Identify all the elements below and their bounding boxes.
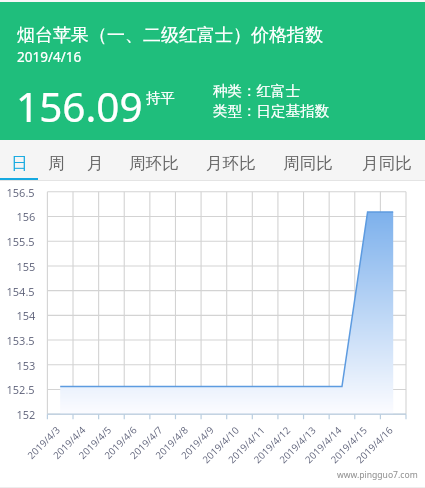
staticText: 日 bbox=[11, 153, 28, 174]
staticText: 周同比 bbox=[283, 153, 333, 174]
button[interactable]: 周环比 bbox=[113, 140, 190, 181]
staticText: 月同比 bbox=[362, 153, 412, 174]
staticText: 持平 bbox=[146, 89, 175, 107]
staticText: 烟台苹果（一、二级红富士）价格指数 bbox=[17, 24, 323, 47]
button[interactable]: 周 bbox=[35, 140, 73, 181]
button[interactable]: 日 bbox=[0, 140, 35, 181]
staticText: 2019/4/16 bbox=[17, 48, 82, 66]
staticText: 月环比 bbox=[206, 153, 256, 174]
staticText: 周 bbox=[48, 153, 65, 174]
button[interactable]: 月环比 bbox=[190, 140, 267, 181]
button[interactable]: 月同比 bbox=[345, 140, 425, 181]
staticText: 类型：日定基指数 bbox=[213, 102, 329, 120]
staticText: 周环比 bbox=[129, 153, 179, 174]
button[interactable]: 月 bbox=[73, 140, 113, 181]
staticText: 月 bbox=[87, 153, 104, 174]
button[interactable]: 周同比 bbox=[267, 140, 345, 181]
staticText: 种类：红富士 bbox=[213, 82, 300, 100]
staticText: 156.09 bbox=[16, 79, 143, 134]
other: 烟台苹果价格指数折线图 bbox=[0, 181, 425, 488]
